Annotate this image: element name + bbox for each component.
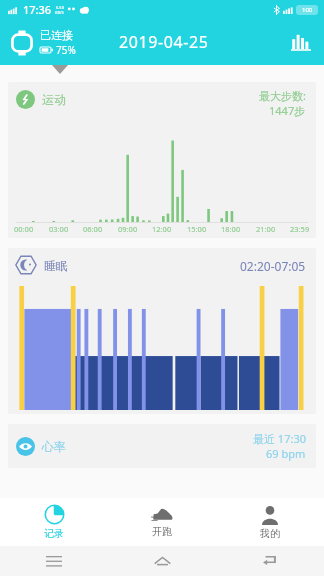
staticText: 心率	[42, 439, 66, 454]
staticText: 睡眠	[44, 258, 68, 273]
button[interactable]: Home	[108, 546, 216, 576]
staticText: 已连接	[40, 28, 73, 42]
staticText: 00:00	[14, 224, 34, 234]
staticText: 我的	[260, 527, 280, 540]
staticText: 开跑	[152, 525, 172, 538]
button[interactable]: 已连接	[9, 28, 76, 57]
staticText: 15:00	[187, 224, 207, 234]
button[interactable]: Recents	[0, 546, 108, 576]
staticText: 记录	[44, 527, 64, 540]
staticText: 最大步数:	[259, 88, 306, 103]
button[interactable]: 记录	[0, 498, 108, 546]
staticText: 1447步	[269, 103, 306, 118]
staticText: 06:00	[83, 224, 103, 234]
staticText: 最近 17:30	[253, 431, 306, 446]
staticText: KB/S	[55, 10, 64, 15]
button[interactable]: Statistics	[288, 29, 314, 55]
staticText: 03:00	[49, 224, 69, 234]
staticText: 23:59	[290, 224, 310, 234]
staticText: 21:00	[256, 224, 276, 234]
button[interactable]: 我的	[216, 498, 324, 546]
staticText: 12:00	[152, 224, 172, 234]
staticText: 09:00	[118, 224, 138, 234]
button[interactable]: Back	[216, 546, 324, 576]
button[interactable]: 运动	[8, 82, 316, 238]
button[interactable]: 心率	[8, 424, 316, 468]
staticText: 运动	[42, 92, 66, 107]
staticText: 17:36	[23, 2, 52, 17]
button[interactable]: 开跑	[108, 498, 216, 546]
button[interactable]: 睡眠	[8, 248, 316, 414]
staticText: 6.50	[56, 5, 64, 10]
staticText: 100	[302, 6, 313, 14]
staticText: 75%	[56, 43, 76, 57]
staticText: 02:20-07:05	[240, 258, 306, 274]
staticText: 18:00	[221, 224, 241, 234]
staticText: 2019-04-25	[119, 31, 209, 53]
staticText: 69 bpm	[266, 446, 306, 461]
